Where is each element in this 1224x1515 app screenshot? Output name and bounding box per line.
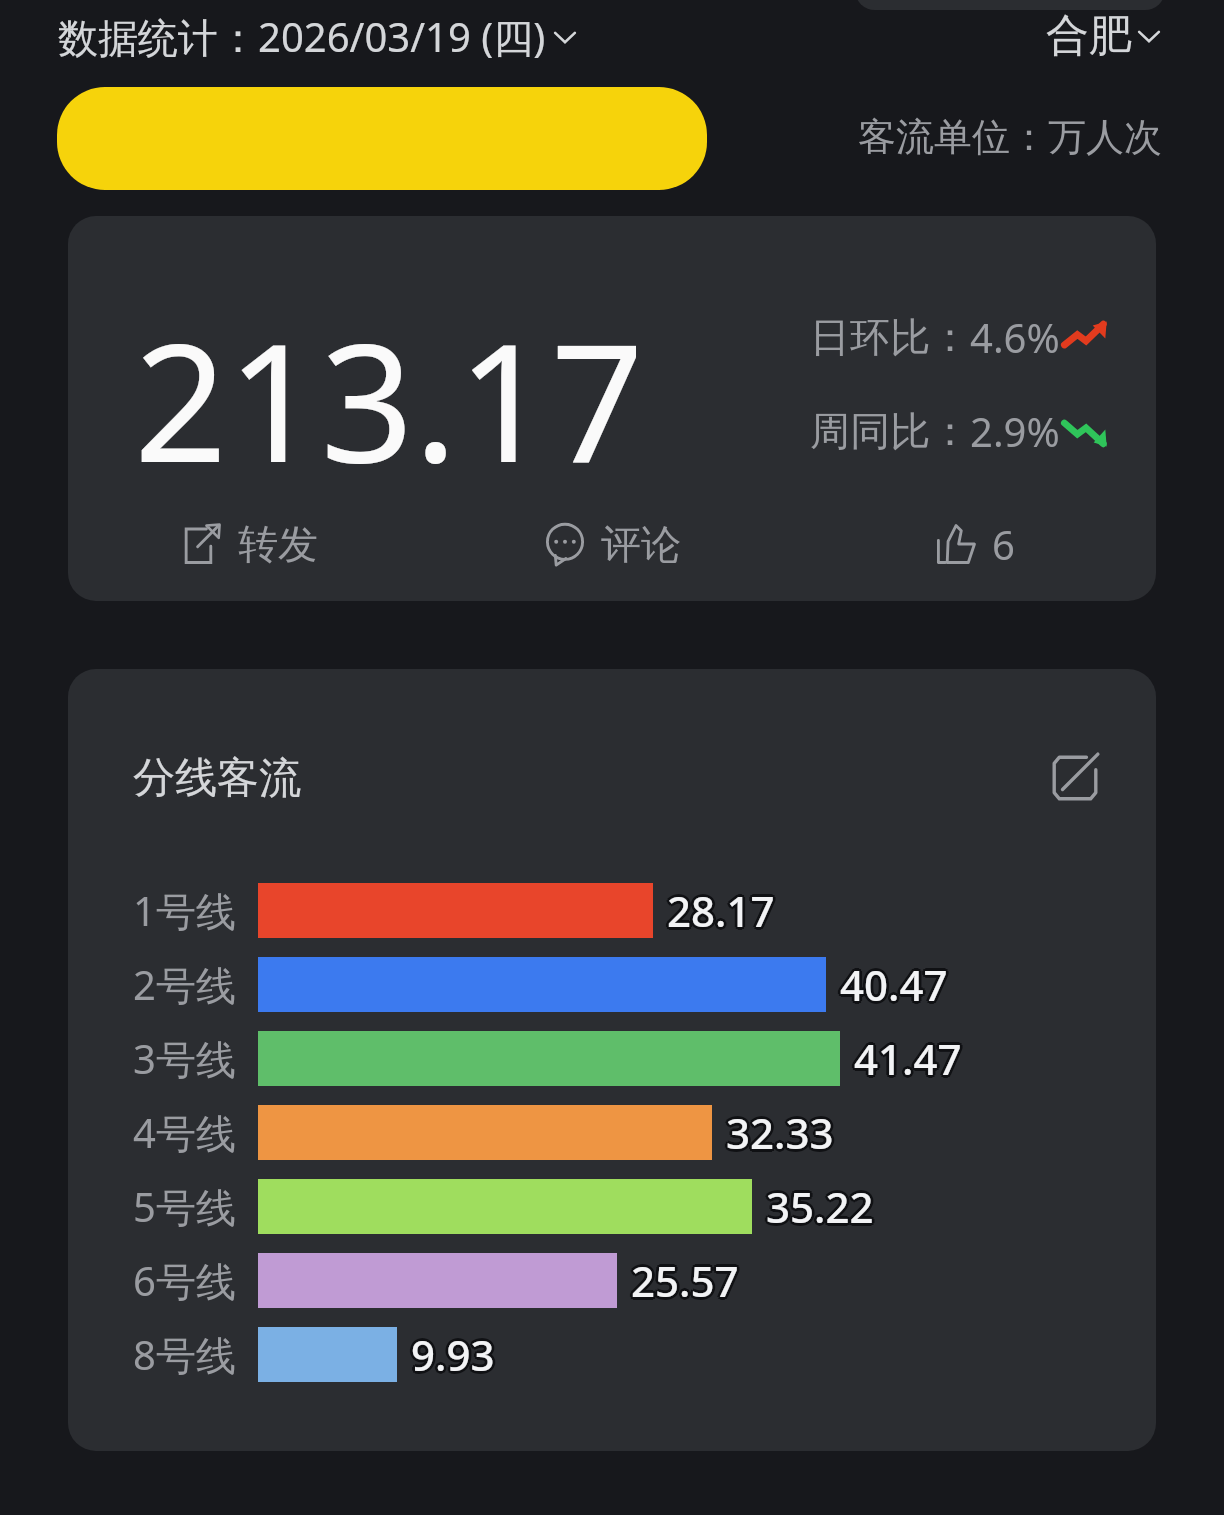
staticText: 6 (992, 517, 1015, 571)
staticText: 28.17 (669, 884, 777, 941)
staticText: 40.47 (838, 954, 946, 1011)
staticText: 9.93 (413, 1328, 497, 1385)
staticText: 28.17 (669, 880, 777, 937)
staticText: 41.47 (852, 1028, 960, 1085)
staticText: 1号线 (133, 883, 236, 938)
staticText: 35.22 (766, 1181, 874, 1238)
button[interactable]: 8号线 (68, 1317, 1156, 1391)
staticText: 41.47 (854, 1027, 962, 1084)
staticText: 32.33 (726, 1107, 834, 1164)
staticText: 28.17 (664, 882, 772, 939)
staticText: 数据统计：2026/03/19 (四) (58, 9, 546, 64)
staticText: 40.47 (842, 954, 950, 1011)
button[interactable]: 评论 (430, 509, 793, 579)
staticText: 9.93 (413, 1324, 497, 1381)
staticText: 32.33 (726, 1104, 834, 1161)
staticText: 9.93 (411, 1326, 495, 1383)
staticText: 40.47 (840, 959, 948, 1016)
staticText: 6号线 (133, 1253, 236, 1308)
button[interactable]: 合肥 (1046, 9, 1162, 63)
button[interactable]: 5号线 (68, 1169, 1156, 1243)
staticText: 9.93 (411, 1329, 495, 1386)
staticText: 转发 (238, 519, 318, 569)
staticText: 日环比： (810, 312, 970, 362)
staticText: 35.22 (768, 1176, 876, 1233)
staticText: 9.93 (408, 1326, 492, 1383)
button[interactable]: 3号线 (68, 1021, 1156, 1095)
staticText: 35.22 (766, 1178, 874, 1235)
staticText: 25.57 (631, 1255, 739, 1312)
staticText: 4.6% (970, 310, 1060, 364)
button[interactable]: Edit (1044, 747, 1106, 809)
staticText: 40.47 (840, 956, 948, 1013)
staticText: 35.22 (769, 1178, 877, 1235)
staticText: 25.57 (628, 1252, 736, 1309)
staticText: 28.17 (665, 884, 773, 941)
staticText: 32.33 (724, 1106, 832, 1163)
staticText: 9.93 (414, 1326, 498, 1383)
staticText: 28.17 (667, 882, 775, 939)
staticText: 41.47 (856, 1032, 964, 1089)
staticText: 28.17 (670, 882, 778, 939)
staticText: 25.57 (633, 1254, 741, 1311)
staticText: 5号线 (133, 1179, 236, 1234)
staticText: 40.47 (838, 958, 946, 1015)
staticText: 25.57 (629, 1254, 737, 1311)
staticText: 28.17 (665, 880, 773, 937)
staticText: 35.22 (766, 1175, 874, 1232)
staticText: 周同比： (810, 406, 970, 456)
staticText: 32.33 (723, 1104, 831, 1161)
staticText: 3号线 (133, 1031, 236, 1086)
staticText: 40.47 (840, 953, 948, 1010)
staticText: 25.57 (629, 1250, 737, 1307)
button[interactable]: 6号线 (68, 1243, 1156, 1317)
staticText: 2.9% (970, 404, 1060, 458)
button[interactable]: 6 (793, 509, 1156, 579)
staticText: 8号线 (133, 1327, 236, 1382)
staticText: 35.22 (768, 1180, 876, 1237)
button[interactable]: 转发 (68, 509, 430, 579)
staticText: 9.93 (409, 1324, 493, 1381)
staticText: 35.22 (763, 1178, 871, 1235)
staticText: 35.22 (764, 1176, 872, 1233)
staticText: 客流单位：万人次 (858, 113, 1162, 161)
staticText: 25.57 (631, 1252, 739, 1309)
staticText: 41.47 (857, 1030, 965, 1087)
staticText: 9.93 (409, 1328, 493, 1385)
staticText: 35.22 (764, 1180, 872, 1237)
button[interactable]: 4号线 (68, 1095, 1156, 1169)
staticText: 分线客流 (133, 752, 301, 805)
staticText: 28.17 (667, 879, 775, 936)
staticText: 评论 (601, 519, 681, 569)
staticText: 40.47 (842, 958, 950, 1015)
staticText: 32.33 (724, 1102, 832, 1159)
staticText: 32.33 (729, 1104, 837, 1161)
button[interactable]: 1号线 (68, 873, 1156, 947)
staticText: 41.47 (856, 1028, 964, 1085)
staticText: 41.47 (852, 1032, 960, 1089)
staticText: 28.17 (667, 885, 775, 942)
staticText: 40.47 (843, 956, 951, 1013)
staticText: 32.33 (726, 1101, 834, 1158)
staticText: 合肥 (1046, 9, 1132, 63)
staticText: 2号线 (133, 957, 236, 1012)
button[interactable]: 数据统计：2026/03/19 (四) (58, 9, 578, 64)
staticText: 40.47 (837, 956, 945, 1013)
staticText: 32.33 (728, 1102, 836, 1159)
button[interactable]: 2号线 (68, 947, 1156, 1021)
staticText: 25.57 (634, 1252, 742, 1309)
staticText: 41.47 (854, 1030, 962, 1087)
staticText: 32.33 (728, 1106, 836, 1163)
staticText: 213.17 (134, 288, 644, 510)
staticText: 9.93 (411, 1323, 495, 1380)
staticText: 4号线 (133, 1105, 236, 1160)
staticText: 25.57 (631, 1249, 739, 1306)
staticText: 25.57 (633, 1250, 741, 1307)
staticText: 41.47 (851, 1030, 959, 1087)
staticText: 41.47 (854, 1033, 962, 1090)
